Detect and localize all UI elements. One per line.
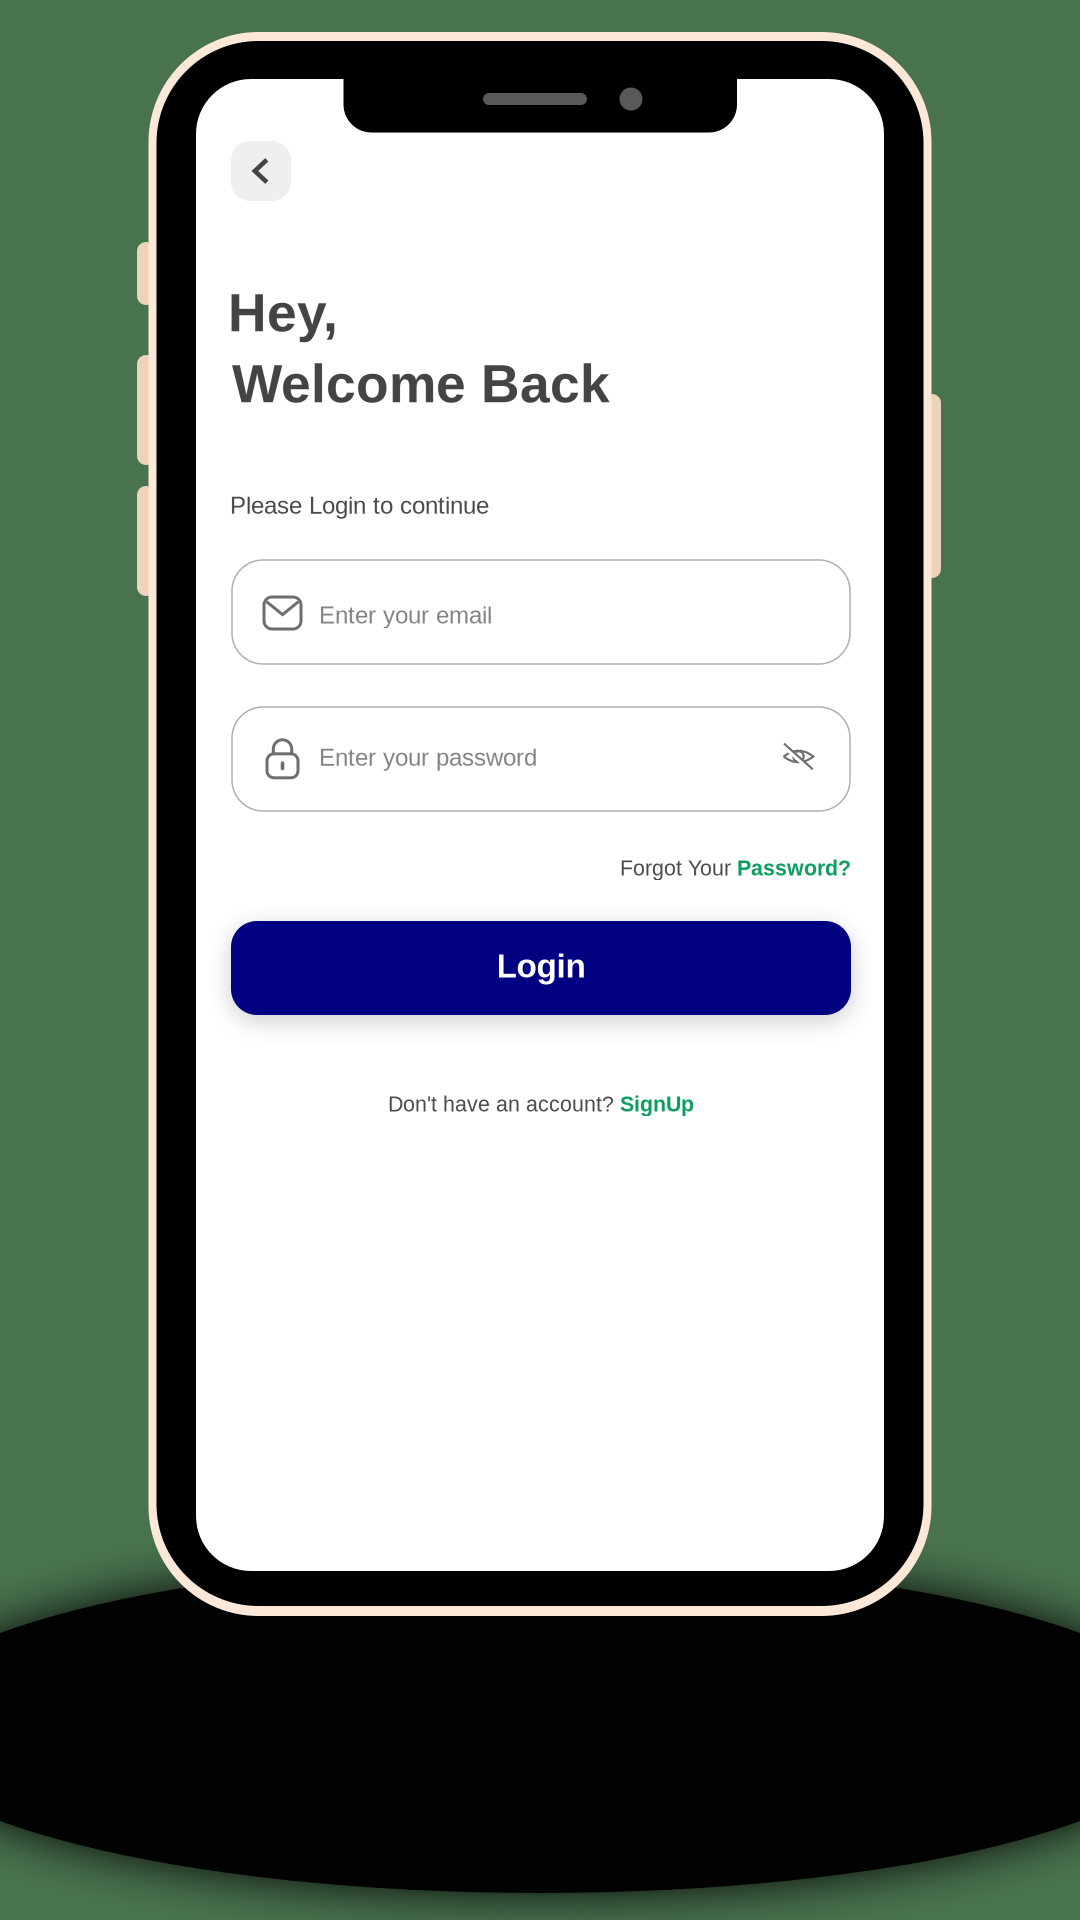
button[interactable]: Login bbox=[231, 921, 851, 1015]
button[interactable]: Forgot Your bbox=[231, 848, 851, 888]
button[interactable]: Don't have an account? bbox=[231, 1085, 851, 1123]
staticText: Enter your password bbox=[319, 744, 537, 771]
staticText: Please Login to continue bbox=[230, 492, 489, 519]
staticText: Don't have an account? bbox=[388, 1092, 620, 1116]
button[interactable]: Show password bbox=[782, 742, 815, 771]
staticText: Forgot Your bbox=[620, 856, 737, 880]
staticText: Hey, bbox=[228, 283, 338, 343]
staticText: Welcome Back bbox=[232, 354, 610, 414]
button[interactable]: Back bbox=[231, 141, 291, 201]
staticText: Login bbox=[496, 947, 585, 985]
staticText: SignUp bbox=[620, 1092, 694, 1116]
staticText: Enter your email bbox=[319, 602, 492, 628]
staticText: Password? bbox=[737, 856, 851, 880]
